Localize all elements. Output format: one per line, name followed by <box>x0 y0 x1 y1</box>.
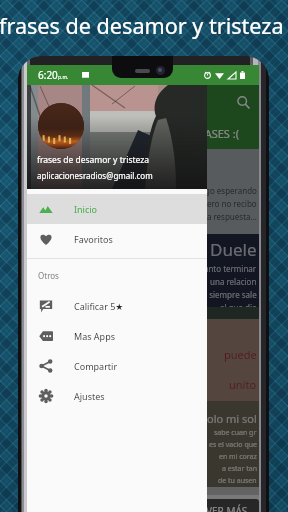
staticText: el que dio <box>220 302 257 307</box>
staticText: Otros <box>38 270 59 281</box>
staticText: aplicacionesradios@gmail.com <box>37 170 153 181</box>
button[interactable]: Ajustes <box>27 381 207 411</box>
staticText: Solo mi sol <box>201 411 257 426</box>
staticText: tanto terminar <box>201 263 257 274</box>
staticText: frases de desamor y tristeza <box>37 154 150 166</box>
staticText: 6:20 <box>38 68 58 82</box>
staticText: Ajustes <box>74 390 105 402</box>
staticText: Calificar 5★ <box>74 300 124 312</box>
button[interactable]: puede <box>27 307 259 401</box>
staticText: p.m. <box>58 74 69 81</box>
button[interactable]: Compartir <box>27 351 207 381</box>
staticText: pero no recibo <box>202 198 257 209</box>
staticText: sabe cuan gr <box>214 428 257 438</box>
staticText: Compartir <box>74 360 118 372</box>
staticText: Favoritos <box>74 233 113 245</box>
staticText: unito <box>229 377 257 392</box>
button[interactable]: Mas Apps <box>27 321 207 351</box>
staticText: Mis frases… <box>139 97 200 112</box>
staticText: Mas Apps <box>74 330 115 342</box>
staticText: es el vacio que <box>209 440 257 450</box>
button[interactable]: Aun sigo esperando <box>27 149 259 234</box>
staticText: donde siempre sale <box>183 289 257 300</box>
staticText: de tu ausen <box>218 476 257 486</box>
button[interactable]: Calificar 5★ <box>27 291 207 321</box>
staticText: una relacion <box>210 276 257 287</box>
button[interactable]: Inicio <box>27 194 207 224</box>
staticText: a estar tan <box>222 464 257 474</box>
button[interactable]: VER MÁS <box>195 499 259 512</box>
staticText: AQUI TUS FRASES :( <box>139 126 239 141</box>
button[interactable]: Solo mi sol <box>27 401 259 487</box>
staticText: tu silencio <box>195 230 257 234</box>
button[interactable]: Favoritos <box>27 224 207 254</box>
staticText: puede <box>224 347 257 362</box>
staticText: Duele <box>210 238 257 261</box>
staticText: Inicio <box>74 203 98 215</box>
staticText: Aun sigo esperando <box>182 185 257 196</box>
staticText: VER MÁS <box>206 504 248 512</box>
staticText: frases de desamor y tristeza <box>0 11 284 40</box>
staticText: en mi coraz <box>219 452 257 462</box>
staticText: una respuesta... <box>197 211 257 222</box>
button[interactable]: Duele <box>27 234 259 307</box>
button[interactable]: Buscar <box>233 92 254 113</box>
